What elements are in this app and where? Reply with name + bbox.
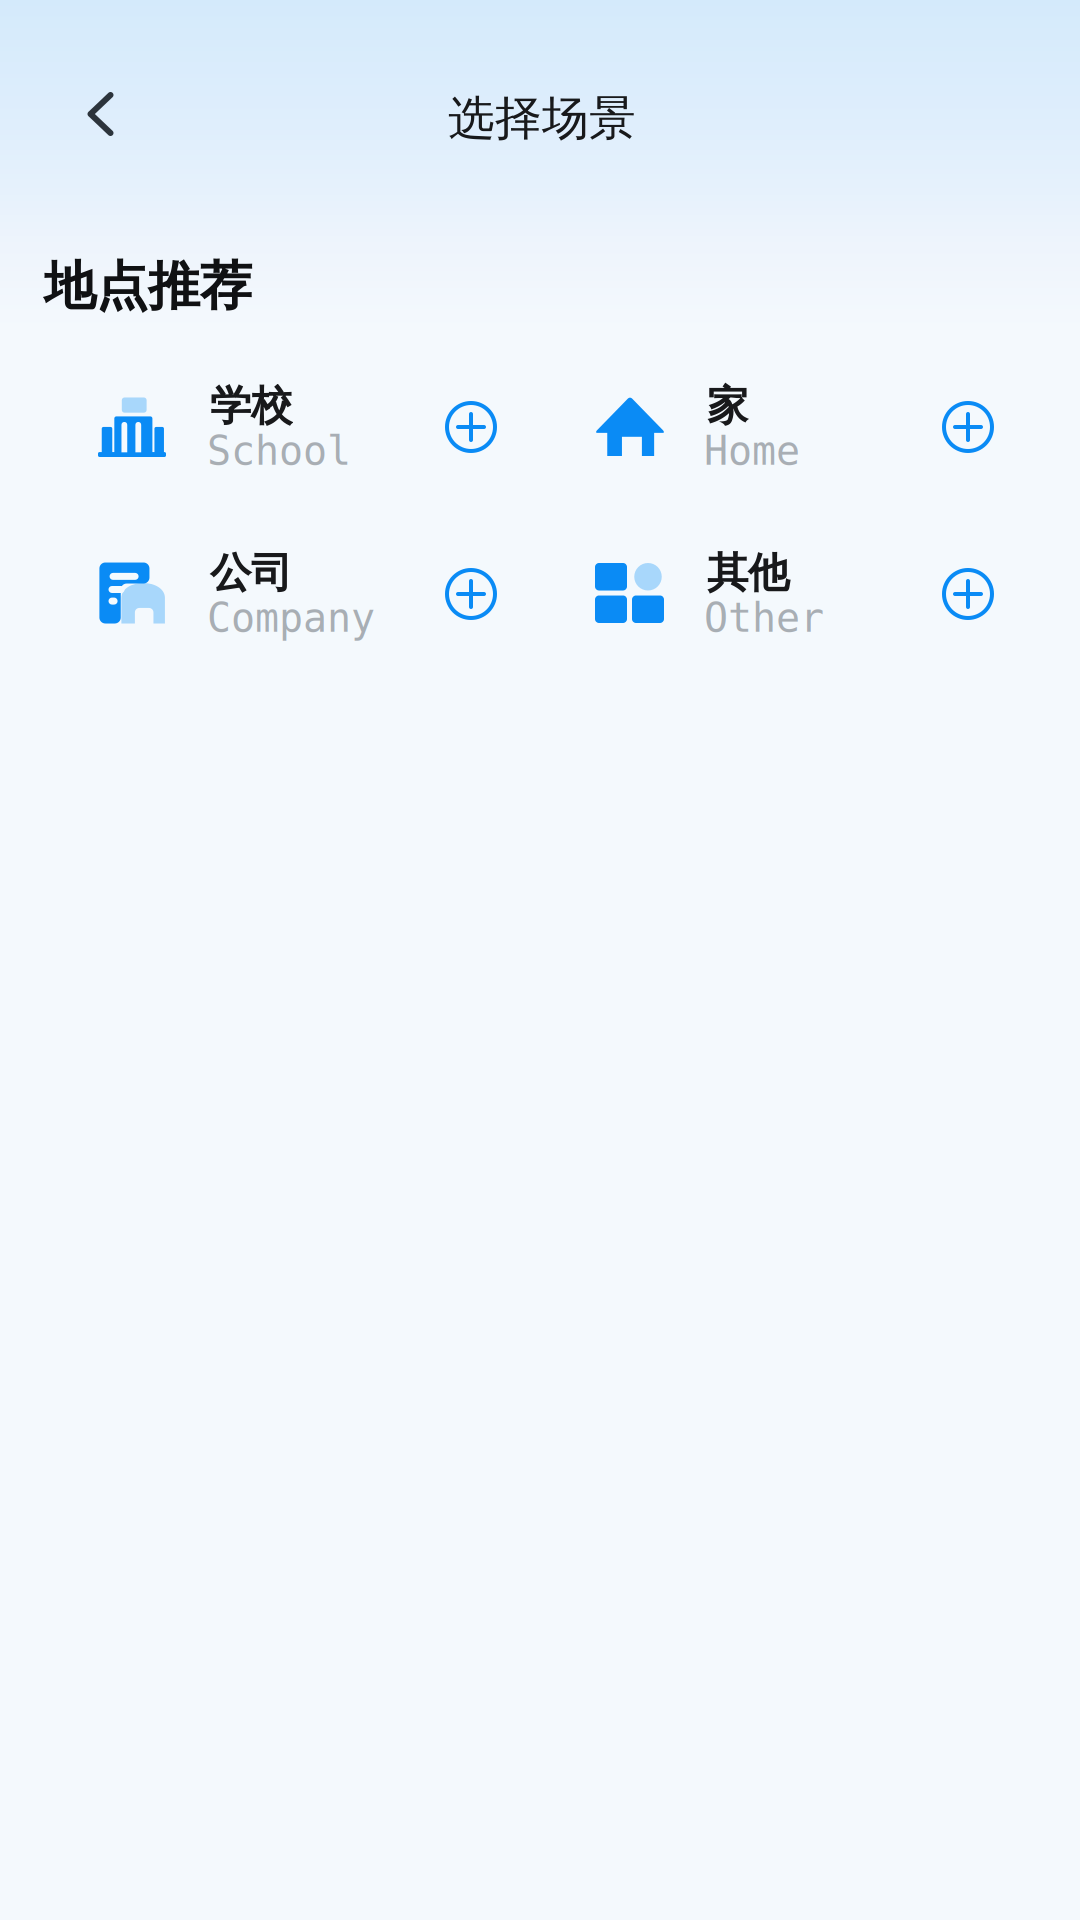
staticText: Home	[704, 428, 800, 474]
staticText: 其他	[707, 548, 789, 598]
staticText: 学校	[210, 381, 292, 431]
button[interactable]: Back	[45, 59, 155, 169]
button[interactable]: 公司	[98, 538, 498, 648]
staticText: Company	[207, 595, 375, 641]
staticText: 家	[707, 381, 748, 431]
staticText: School	[207, 428, 351, 474]
staticText: 公司	[210, 548, 292, 598]
staticText: 选择场景	[448, 90, 636, 147]
button[interactable]: 其他	[595, 538, 995, 648]
button[interactable]: 学校	[98, 371, 498, 481]
staticText: 地点推荐	[44, 255, 252, 318]
button[interactable]: 家	[595, 371, 995, 481]
staticText: Other	[704, 595, 824, 641]
